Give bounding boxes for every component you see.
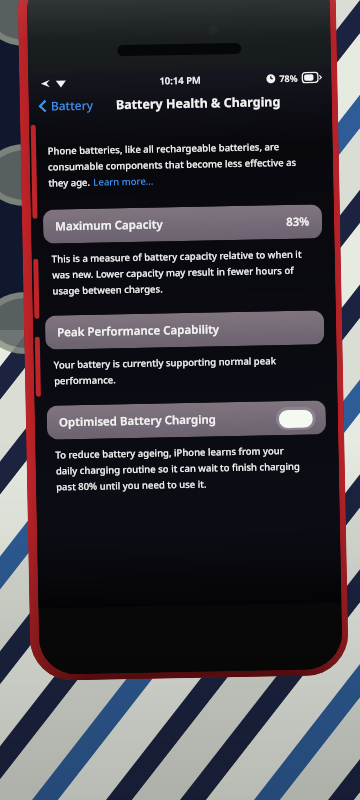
staticText: 78% [279,72,298,84]
staticText: Optimised Battery Charging [59,411,216,430]
button[interactable]: Learn more… [93,174,154,189]
button[interactable]: Battery [37,94,96,117]
staticText: Phone batteries, like all rechargeable b… [48,140,280,158]
staticText: consumable components that become less e… [48,156,297,174]
staticText: Battery Health & Charging [116,93,281,113]
staticText: Maximum Capacity [55,216,163,234]
staticText: 83% [286,213,310,230]
button[interactable]: Optimised Battery Charging [47,400,326,440]
staticText: they age. [48,176,93,190]
staticText: Peak Performance Capability [57,321,219,340]
button[interactable]: Maximum Capacity [43,204,322,244]
staticText: daily charging routine so it can wait to… [56,460,300,477]
button[interactable]: Peak Performance Capability [45,310,324,350]
staticText: usage between charges. [52,282,163,297]
staticText: To reduce battery ageing, iPhone learns … [55,444,285,461]
staticText: 10:14 PM [159,74,201,87]
staticText: Battery [51,97,94,113]
staticText: performance. [54,373,116,387]
staticText: Learn more… [93,174,154,189]
staticText: Your battery is currently supporting nor… [54,354,277,371]
staticText: This is a measure of battery capacity re… [52,248,302,265]
staticText: past 80% until you need to use it. [56,478,207,493]
staticText: was new. Lower capacity may result in fe… [52,264,294,281]
button[interactable]: Optimised Battery Charging toggle [276,406,316,430]
